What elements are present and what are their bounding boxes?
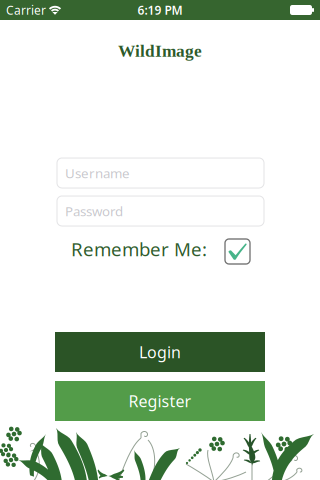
staticText: 6:19 PM <box>137 2 182 18</box>
staticText: Carrier <box>6 2 46 18</box>
staticText: Login <box>139 341 181 363</box>
staticText: Username <box>65 164 130 182</box>
staticText: Register <box>128 390 191 412</box>
button[interactable]: Password <box>57 196 264 226</box>
staticText: Password <box>65 202 123 220</box>
button[interactable]: Username <box>57 158 264 188</box>
staticText: WildImage <box>118 41 202 61</box>
button[interactable]: Register <box>55 381 265 421</box>
button[interactable]: Login <box>55 332 265 372</box>
staticText: Remember Me: <box>71 237 207 261</box>
button[interactable]: Remember Me <box>225 239 250 264</box>
